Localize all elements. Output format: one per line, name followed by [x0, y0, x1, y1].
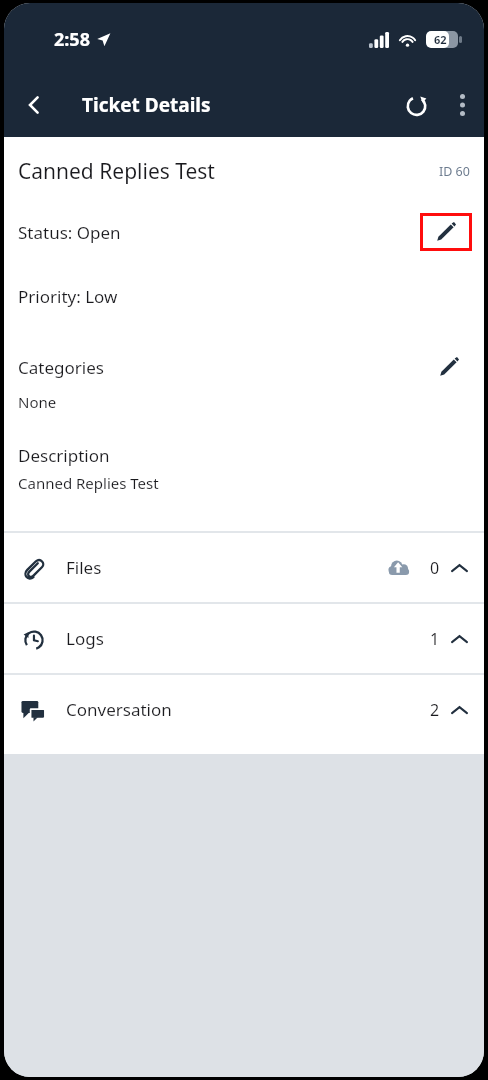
staticText: 2:58 — [54, 27, 90, 52]
staticText: Canned Replies Test — [18, 157, 439, 186]
staticText: 0 — [430, 557, 440, 579]
staticText: ID 60 — [439, 163, 470, 180]
staticText: Categories — [18, 356, 432, 379]
staticText: Priority: Low — [18, 285, 118, 308]
button[interactable]: Logs — [4, 604, 484, 673]
button[interactable]: Back — [12, 83, 56, 127]
staticText: Ticket Details — [82, 92, 211, 118]
button[interactable]: Upload file — [382, 551, 416, 585]
staticText: Canned Replies Test — [18, 473, 159, 493]
button[interactable]: More options — [440, 83, 484, 127]
staticText: None — [18, 392, 57, 412]
staticText: 1 — [430, 628, 440, 650]
button[interactable]: Refresh — [392, 81, 440, 129]
staticText: Status: Open — [18, 221, 420, 244]
staticText: Conversation — [66, 698, 430, 721]
staticText: Logs — [66, 627, 430, 650]
button[interactable]: Files — [4, 533, 484, 602]
button[interactable]: Edit categories — [432, 350, 466, 384]
staticText: 62 — [434, 32, 447, 47]
button[interactable]: Conversation — [4, 675, 484, 744]
staticText: Description — [18, 444, 110, 467]
button[interactable]: Edit status — [423, 216, 469, 248]
staticText: Files — [66, 556, 382, 579]
staticText: 2 — [430, 699, 440, 721]
